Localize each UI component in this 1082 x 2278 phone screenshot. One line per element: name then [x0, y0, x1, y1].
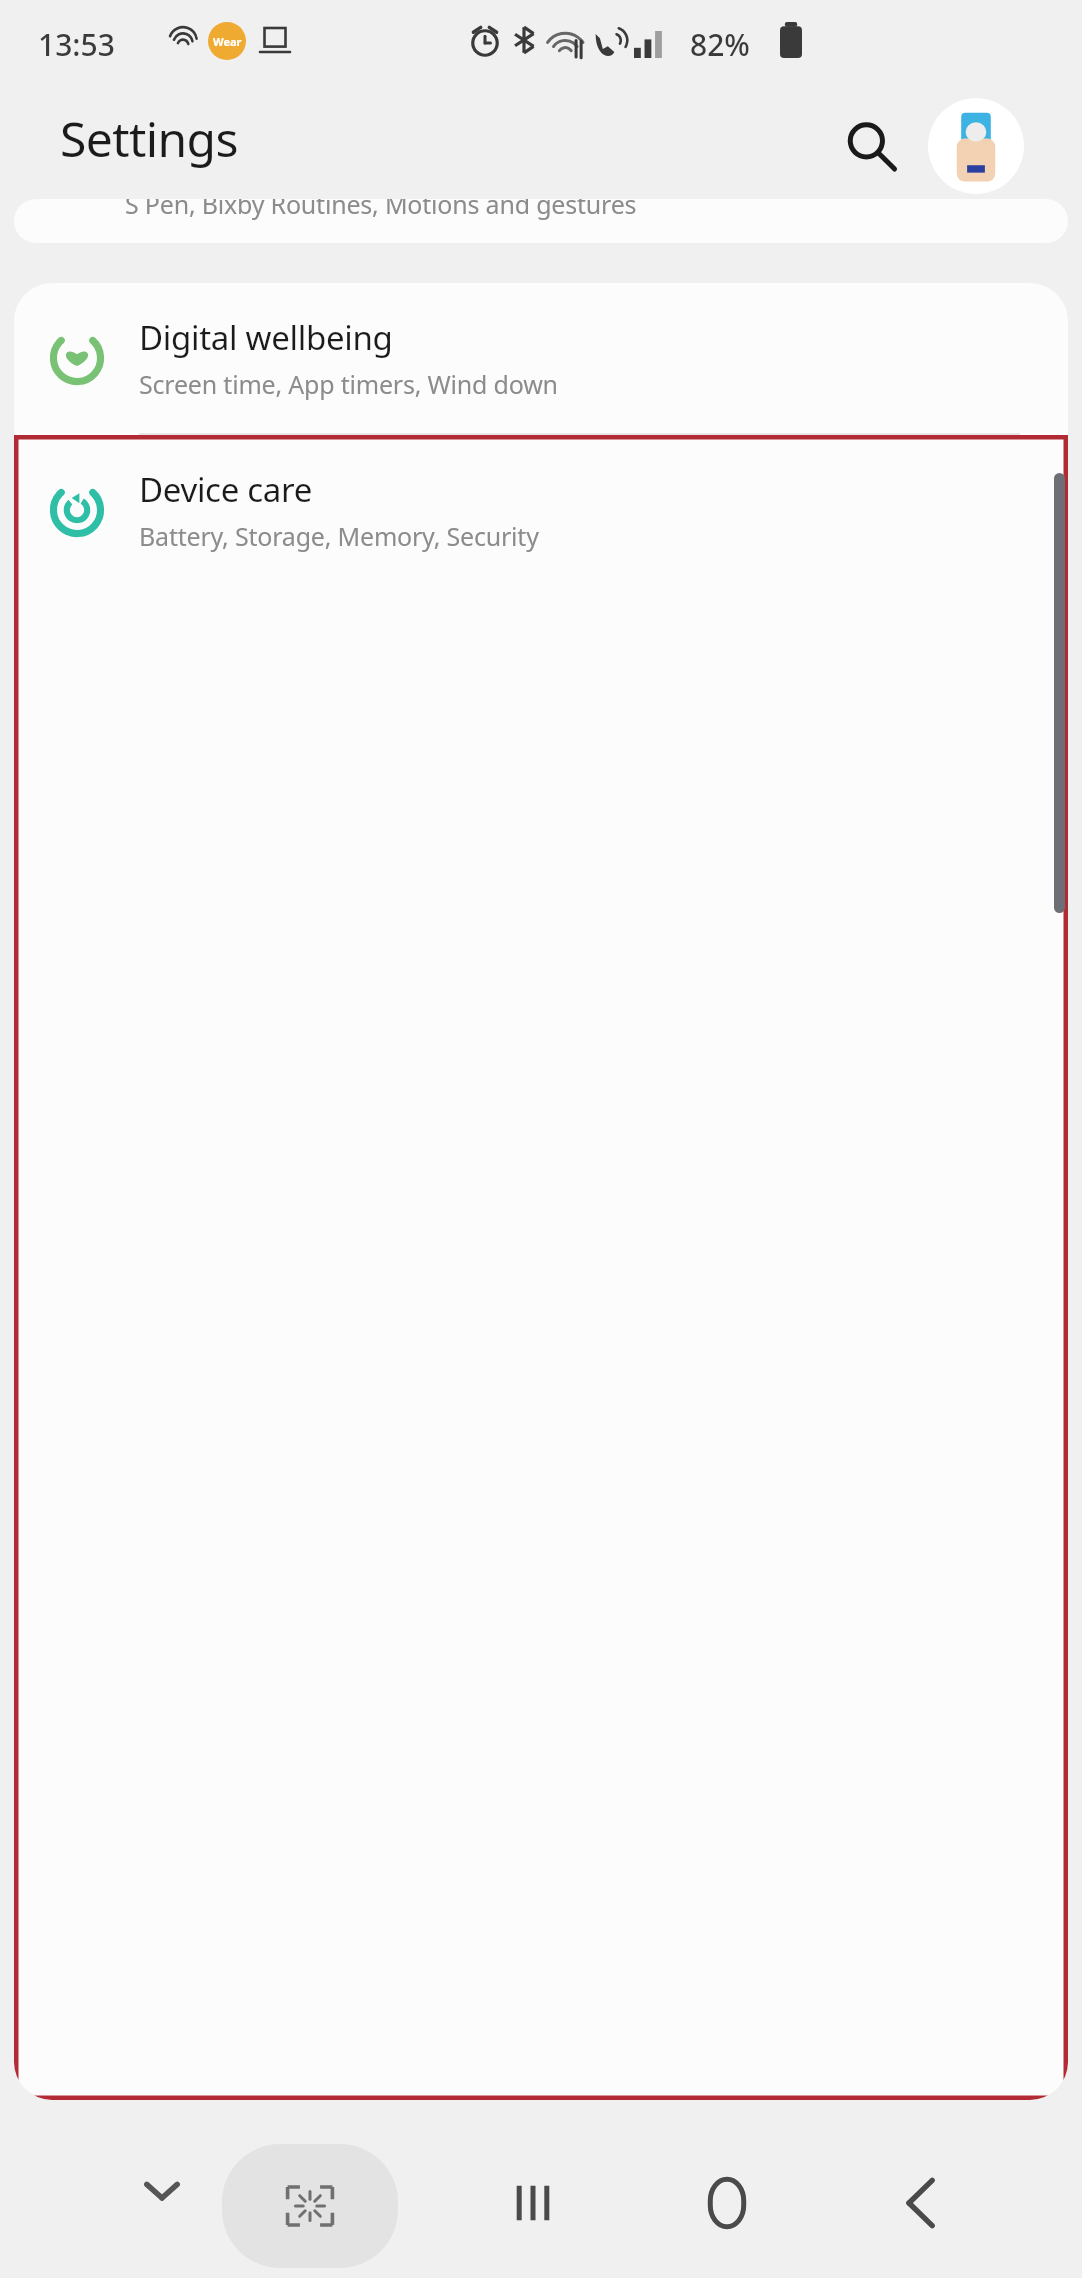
button[interactable]: Device care — [14, 435, 1068, 585]
staticText: Battery, Storage, Memory, Security — [139, 519, 539, 553]
staticText: S Pen, Bixby Routines, Motions and gestu… — [125, 199, 637, 221]
button[interactable]: Back — [866, 2148, 976, 2258]
button[interactable]: Hide keyboard — [120, 2148, 204, 2232]
button[interactable]: Recent apps — [478, 2148, 588, 2258]
staticText: Screen time, App timers, Wind down — [139, 367, 558, 401]
button[interactable]: Digital wellbeing — [14, 283, 1068, 433]
staticText: Digital wellbeing — [139, 315, 393, 360]
staticText: Settings — [60, 106, 238, 171]
staticText: Wear — [213, 34, 242, 49]
button[interactable]: Home — [672, 2148, 782, 2258]
button[interactable]: Shrink screen — [222, 2144, 398, 2268]
staticText: Device care — [139, 467, 312, 512]
button[interactable]: Account — [928, 98, 1024, 194]
staticText: 13:53 — [38, 24, 115, 65]
staticText: 82% — [690, 24, 750, 65]
button[interactable]: Search — [822, 98, 918, 194]
button[interactable]: S Pen, Bixby Routines, Motions and gestu… — [14, 199, 1068, 243]
